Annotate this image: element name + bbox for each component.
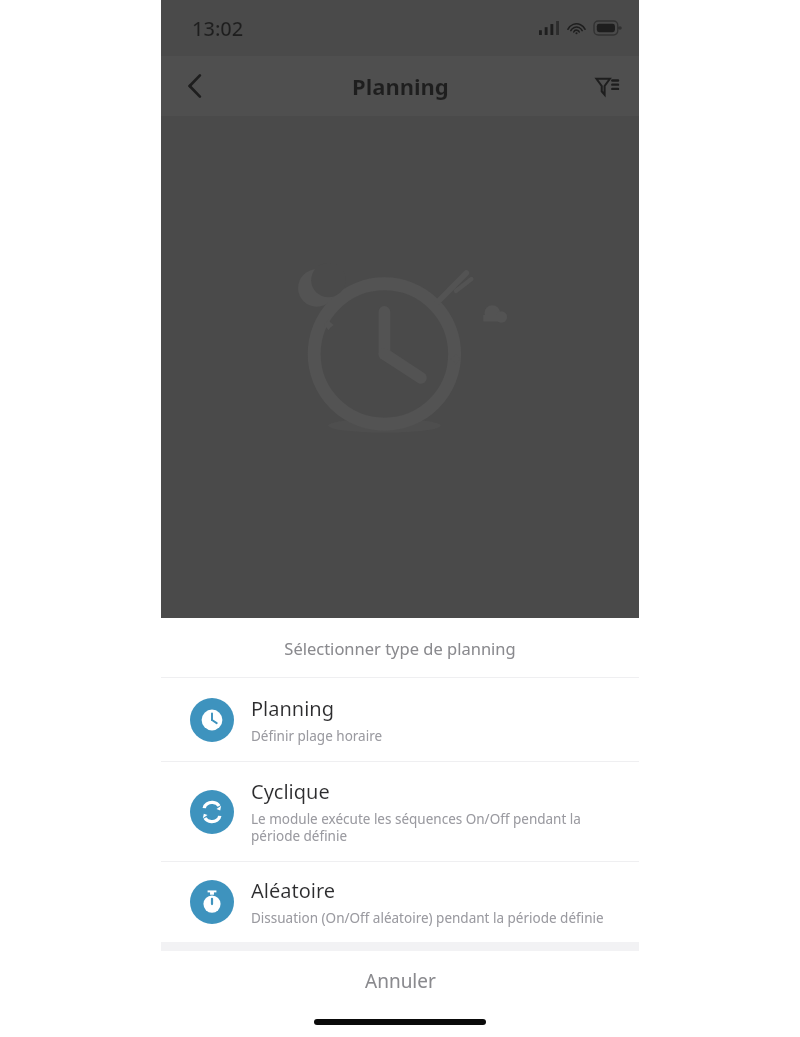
- staticText: 13:02: [192, 15, 244, 42]
- button[interactable]: Aléatoire: [161, 862, 639, 942]
- staticText: Planning: [251, 695, 335, 722]
- button[interactable]: Cyclique: [161, 762, 639, 861]
- staticText: Aléatoire: [251, 877, 336, 904]
- staticText: Cyclique: [251, 778, 330, 805]
- staticText: Le module exécute les séquences On/Off p…: [251, 810, 619, 845]
- staticText: Annuler: [365, 968, 436, 994]
- button[interactable]: Annuler: [161, 951, 639, 1037]
- staticText: Sélectionner type de planning: [284, 637, 516, 659]
- staticText: Dissuation (On/Off aléatoire) pendant la…: [251, 909, 604, 927]
- button[interactable]: Filter: [584, 63, 630, 109]
- button[interactable]: Back: [171, 62, 219, 110]
- staticText: Planning: [352, 71, 449, 101]
- staticText: Définir plage horaire: [251, 727, 383, 745]
- button[interactable]: Planning: [161, 678, 639, 761]
